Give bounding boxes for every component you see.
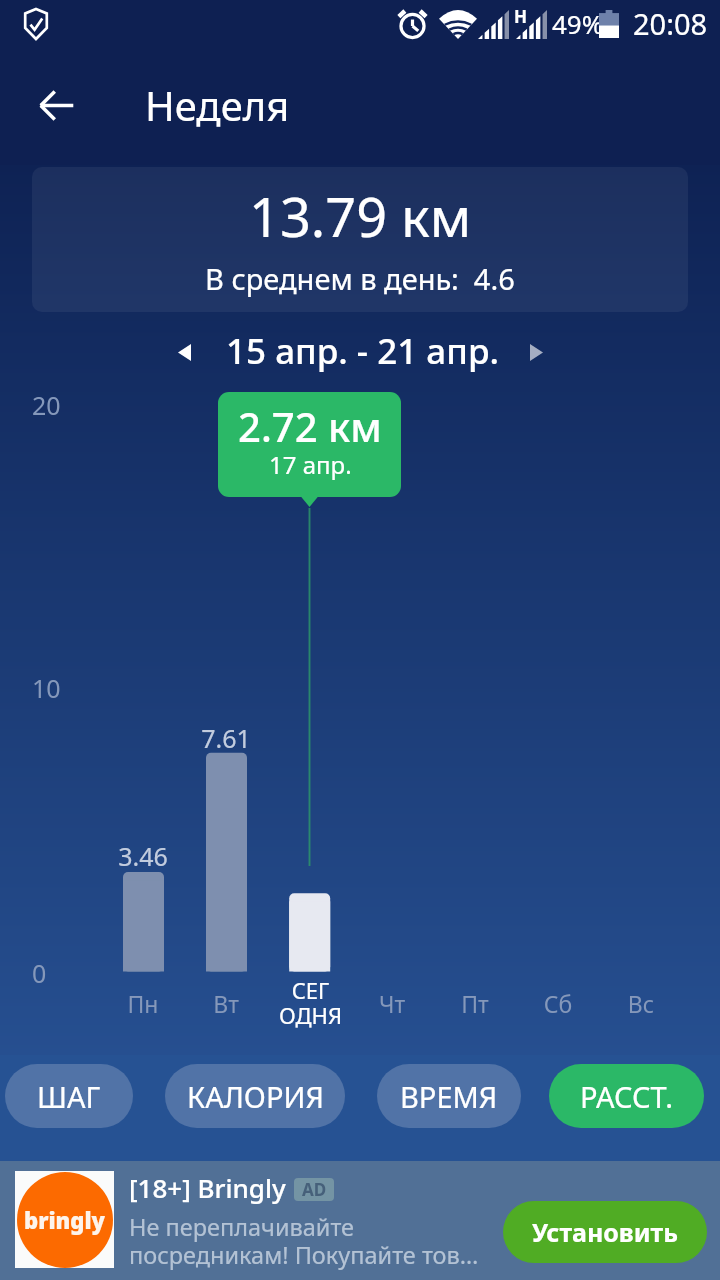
staticText: bringly bbox=[24, 1205, 106, 1235]
staticText: Пт bbox=[415, 988, 535, 1019]
staticText: AD bbox=[302, 1178, 327, 1201]
staticText: 13.79 км bbox=[249, 179, 472, 253]
button[interactable]: КАЛОРИЯ bbox=[165, 1064, 345, 1128]
button[interactable]: Back bbox=[28, 77, 84, 133]
staticText: 17 апр. bbox=[269, 448, 352, 481]
staticText: СЕГ ОДНЯ bbox=[260, 975, 361, 1031]
staticText: ВРЕМЯ bbox=[400, 1077, 498, 1116]
button[interactable]: 13.79 км bbox=[32, 167, 688, 312]
staticText: [18+] Bringly bbox=[129, 1170, 286, 1205]
staticText: В среднем в день: 4.6 bbox=[205, 259, 515, 298]
staticText: 20:08 bbox=[633, 4, 708, 43]
staticText: РАССТ. bbox=[580, 1077, 674, 1116]
staticText: Пн bbox=[83, 988, 203, 1019]
staticText: 2.72 км bbox=[238, 399, 382, 453]
staticText: 7.61 bbox=[166, 721, 286, 755]
staticText: 10 bbox=[32, 671, 61, 705]
staticText: Вс bbox=[581, 988, 701, 1019]
button[interactable]: Next week bbox=[514, 330, 558, 374]
staticText: H bbox=[514, 5, 528, 28]
button[interactable]: Previous week bbox=[162, 330, 206, 374]
button[interactable]: ВРЕМЯ bbox=[377, 1064, 521, 1128]
staticText: 15 апр. - 21 апр. bbox=[226, 327, 499, 375]
staticText: КАЛОРИЯ bbox=[187, 1077, 324, 1116]
staticText: 0 bbox=[32, 956, 47, 990]
button[interactable]: ШАГ bbox=[5, 1064, 133, 1128]
staticText: ШАГ bbox=[37, 1077, 101, 1116]
staticText: Чт bbox=[332, 988, 452, 1019]
button[interactable]: РАССТ. bbox=[549, 1064, 704, 1128]
button[interactable]: 2.72 км bbox=[218, 392, 401, 497]
staticText: Установить bbox=[532, 1215, 679, 1249]
staticText: 49% bbox=[552, 6, 604, 41]
staticText: Неделя bbox=[145, 78, 290, 132]
staticText: 3.46 bbox=[83, 839, 203, 873]
staticText: Не переплачивайте посредникам! Покупайте… bbox=[129, 1211, 479, 1271]
button[interactable]: Установить bbox=[503, 1201, 707, 1263]
staticText: 20 bbox=[32, 388, 61, 422]
staticText: Вт bbox=[166, 988, 286, 1019]
staticText: Сб bbox=[498, 988, 618, 1019]
